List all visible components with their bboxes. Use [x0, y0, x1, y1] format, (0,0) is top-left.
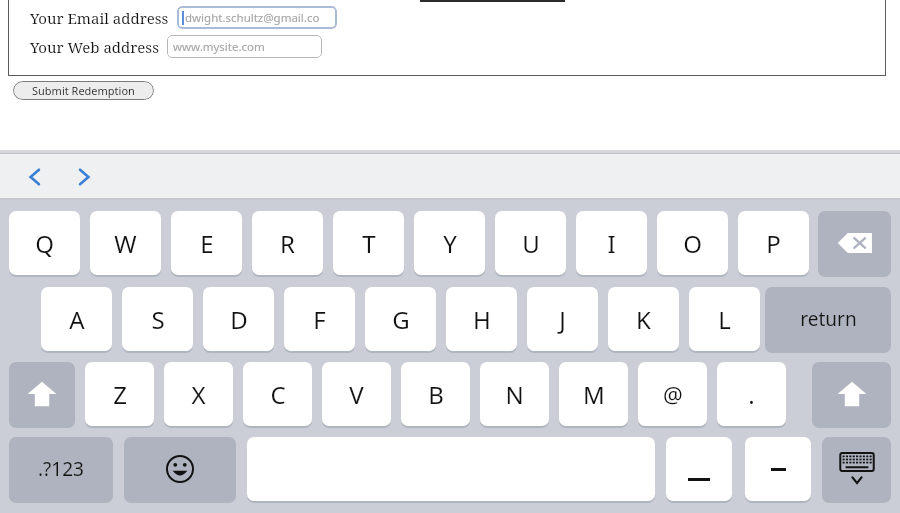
button[interactable]: N	[480, 362, 549, 426]
staticText: www.mysite.com	[173, 39, 265, 55]
button[interactable]: M	[559, 362, 628, 426]
button[interactable]: Q	[9, 211, 80, 275]
staticText: R	[280, 227, 295, 260]
button[interactable]: Shift	[812, 362, 891, 426]
staticText: dwight.schultz@gmail.co	[185, 10, 320, 26]
button[interactable]: T	[333, 211, 404, 275]
staticText: Your Web address	[30, 37, 159, 57]
button[interactable]: @	[638, 362, 707, 426]
button[interactable]: P	[738, 211, 809, 275]
staticText: X	[191, 378, 206, 411]
button[interactable]: V	[322, 362, 391, 426]
staticText: return	[800, 306, 857, 332]
staticText: T	[362, 227, 376, 260]
button[interactable]: I	[576, 211, 647, 275]
button[interactable]: J	[527, 287, 598, 351]
staticText: Z	[113, 378, 127, 411]
button[interactable]: Emoji	[124, 437, 236, 501]
button[interactable]: Y	[414, 211, 485, 275]
button[interactable]: Z	[85, 362, 154, 426]
button[interactable]: W	[90, 211, 161, 275]
staticText: G	[392, 303, 410, 336]
button[interactable]: L	[689, 287, 760, 351]
staticText: H	[473, 303, 491, 336]
staticText: A	[69, 303, 85, 336]
button[interactable]: dwight.schultz@gmail.co	[177, 6, 337, 29]
staticText: .?123	[38, 456, 84, 482]
staticText: D	[230, 303, 248, 336]
button[interactable]: Return	[765, 287, 891, 351]
button[interactable]: www.mysite.com	[167, 35, 322, 58]
staticText: C	[270, 378, 286, 411]
button[interactable]: .	[717, 362, 786, 426]
button[interactable]: A	[41, 287, 112, 351]
staticText: S	[151, 303, 165, 336]
staticText: Q	[35, 227, 54, 260]
staticText: U	[522, 227, 540, 260]
staticText: L	[718, 303, 731, 336]
staticText: F	[313, 303, 326, 336]
button[interactable]: Submit Redemption	[13, 81, 154, 100]
button[interactable]: E	[171, 211, 242, 275]
button[interactable]: Next field	[64, 153, 104, 200]
staticText: P	[766, 227, 781, 260]
staticText: Y	[443, 227, 457, 260]
button[interactable]: C	[243, 362, 312, 426]
button[interactable]: X	[164, 362, 233, 426]
button[interactable]: O	[657, 211, 728, 275]
button[interactable]: D	[203, 287, 274, 351]
staticText: N	[505, 378, 524, 411]
button[interactable]: H	[446, 287, 517, 351]
button[interactable]: Backspace	[818, 211, 891, 275]
button[interactable]: Underscore	[666, 437, 732, 501]
staticText: J	[559, 303, 566, 336]
button[interactable]: F	[284, 287, 355, 351]
button[interactable]: Hyphen	[745, 437, 811, 501]
staticText: V	[349, 378, 364, 411]
button[interactable]: K	[608, 287, 679, 351]
staticText: K	[636, 303, 651, 336]
button[interactable]: G	[365, 287, 436, 351]
staticText: Submit Redemption	[32, 83, 135, 98]
button[interactable]: Hide keyboard	[822, 437, 891, 501]
staticText: O	[683, 227, 702, 260]
staticText: M	[583, 378, 605, 411]
button[interactable]: B	[401, 362, 470, 426]
button[interactable]: Shift	[9, 362, 75, 426]
button[interactable]: Numbers and symbols	[9, 437, 113, 501]
staticText: Your Email address	[30, 8, 169, 28]
staticText: @	[663, 379, 683, 409]
staticText: .	[748, 378, 755, 411]
button[interactable]: U	[495, 211, 566, 275]
button[interactable]: S	[122, 287, 193, 351]
staticText: B	[428, 378, 444, 411]
button[interactable]: Previous field	[16, 153, 88, 200]
staticText: W	[114, 227, 137, 260]
staticText: E	[200, 227, 214, 260]
staticText: I	[607, 227, 616, 260]
button[interactable]: R	[252, 211, 323, 275]
